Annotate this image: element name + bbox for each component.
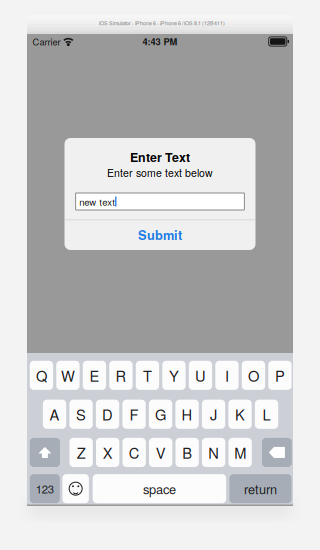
button[interactable]: D [96, 400, 119, 429]
staticText: D [102, 404, 113, 425]
staticText: T [143, 365, 152, 386]
button[interactable]: Emoji [62, 474, 89, 503]
staticText: 4:43 PM [142, 35, 177, 48]
staticText: X [103, 442, 113, 463]
staticText: F [130, 404, 139, 425]
button[interactable]: T [136, 361, 159, 390]
button[interactable]: K [228, 400, 252, 429]
button[interactable]: A [43, 400, 66, 429]
button[interactable]: Numbers [30, 474, 60, 503]
button[interactable]: S [69, 400, 93, 429]
staticText: K [235, 404, 245, 425]
button[interactable]: Q [30, 361, 53, 390]
button[interactable]: G [149, 400, 172, 429]
button[interactable]: Delete [262, 438, 292, 467]
staticText: return [244, 479, 277, 498]
button[interactable]: P [268, 361, 292, 390]
button[interactable]: Z [69, 438, 93, 467]
button[interactable]: L [255, 400, 278, 429]
staticText: M [234, 442, 246, 463]
staticText: J [210, 404, 217, 425]
staticText: S [76, 404, 86, 425]
staticText: L [263, 404, 271, 425]
staticText: W [61, 365, 75, 386]
staticText: Carrier [32, 35, 60, 48]
button[interactable]: E [83, 361, 106, 390]
button[interactable]: O [242, 361, 265, 390]
staticText: V [156, 442, 166, 463]
staticText: new text [79, 195, 115, 208]
staticText: A [49, 404, 59, 425]
staticText: B [182, 442, 192, 463]
button[interactable]: H [175, 400, 199, 429]
button[interactable]: N [202, 438, 225, 467]
button[interactable]: Submit [64, 219, 255, 250]
button[interactable]: V [149, 438, 172, 467]
button[interactable]: R [109, 361, 133, 390]
staticText: iOS Simulator - iPhone 6 - iPhone 6 / iO… [99, 19, 225, 27]
staticText: Enter some text below [107, 165, 213, 180]
staticText: H [182, 404, 193, 425]
staticText: C [129, 442, 140, 463]
button[interactable]: X [96, 438, 119, 467]
staticText: Q [36, 365, 47, 386]
button[interactable]: F [122, 400, 146, 429]
staticText: Y [169, 365, 179, 386]
button[interactable]: B [175, 438, 199, 467]
staticText: U [195, 365, 206, 386]
staticText: P [275, 365, 285, 386]
staticText: N [208, 442, 219, 463]
button[interactable]: M [228, 438, 252, 467]
staticText: G [155, 404, 166, 425]
staticText: Submit [138, 226, 182, 244]
button[interactable]: I [215, 361, 239, 390]
button[interactable]: return [229, 474, 291, 503]
staticText: E [89, 365, 99, 386]
staticText: I [225, 365, 229, 386]
staticText: R [115, 365, 126, 386]
button[interactable]: U [189, 361, 212, 390]
staticText: 123 [36, 480, 54, 497]
button[interactable]: C [122, 438, 146, 467]
staticText: Enter Text [130, 148, 190, 166]
staticText: O [248, 365, 259, 386]
staticText: space [143, 479, 176, 498]
button[interactable]: space [93, 474, 226, 503]
button[interactable]: J [202, 400, 225, 429]
button[interactable]: Y [162, 361, 186, 390]
staticText: Z [77, 442, 86, 463]
button[interactable]: W [56, 361, 80, 390]
button[interactable]: Shift [30, 438, 60, 467]
